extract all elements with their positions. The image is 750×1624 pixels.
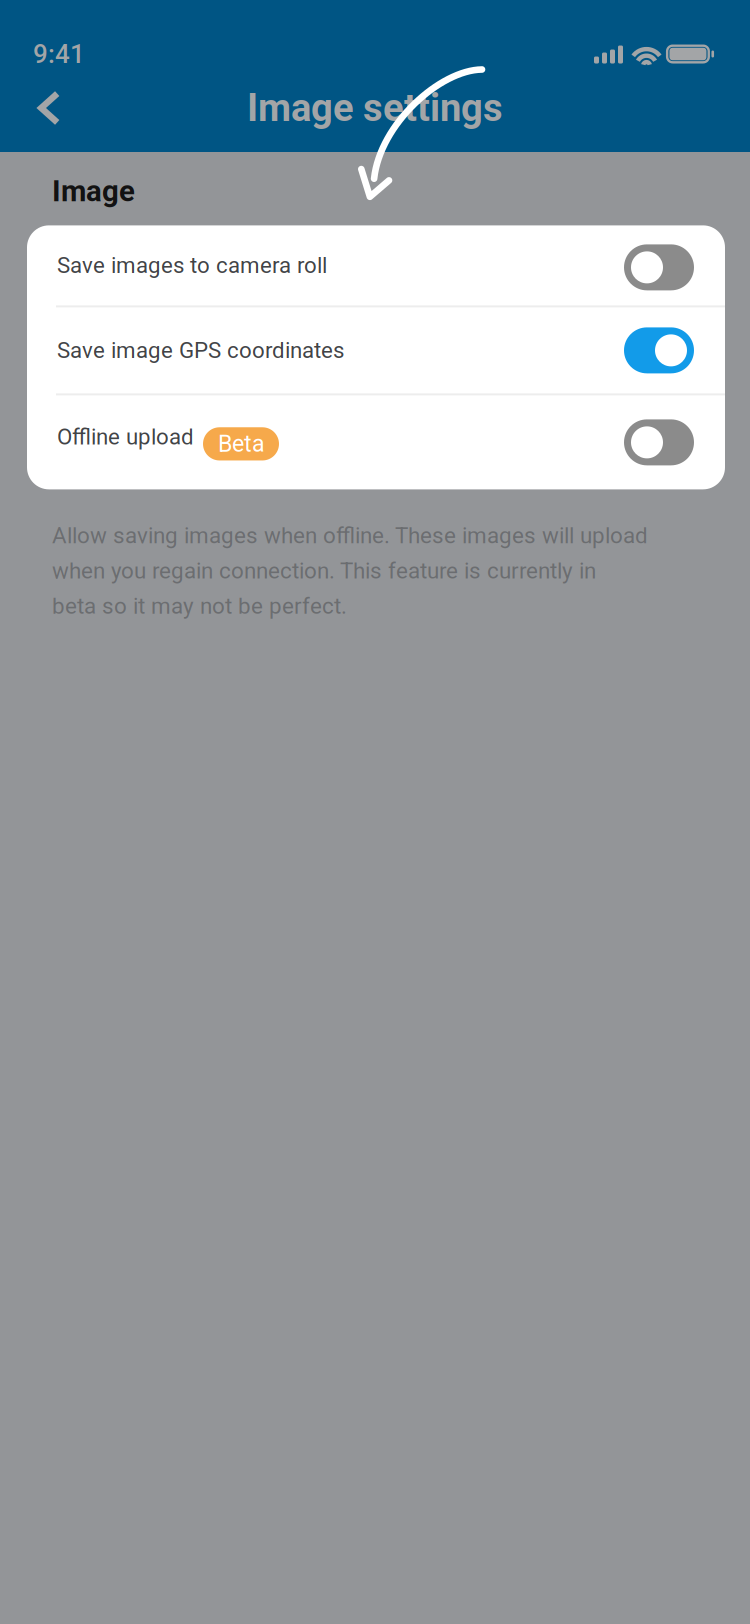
staticText: Image settings <box>247 86 503 130</box>
button[interactable]: Back <box>0 77 84 139</box>
button[interactable]: Offline upload <box>27 395 725 489</box>
staticText: Save image GPS coordinates <box>57 337 344 363</box>
staticText: Offline upload <box>57 424 194 450</box>
staticText: Image <box>52 174 135 208</box>
button[interactable]: Save image GPS coordinates <box>27 307 725 393</box>
staticText: Allow saving images when offline. These … <box>52 522 648 619</box>
button[interactable]: Save images to camera roll <box>27 225 725 305</box>
button[interactable]: Turn setting on <box>624 244 694 290</box>
button[interactable]: Turn setting on <box>624 419 694 465</box>
staticText: Beta <box>218 430 265 457</box>
staticText: Save images to camera roll <box>57 252 327 278</box>
staticText: 9:41 <box>33 39 85 69</box>
button[interactable]: Turn setting off <box>624 327 694 373</box>
